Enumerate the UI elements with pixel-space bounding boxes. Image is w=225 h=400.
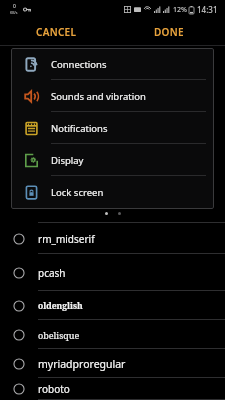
staticText: myriadproregular xyxy=(38,357,126,371)
staticText: oldenglish xyxy=(38,300,83,312)
staticText: 14:31 xyxy=(197,4,218,15)
staticText: roboto xyxy=(38,382,70,396)
button[interactable]: rm_midserif xyxy=(0,223,225,254)
button[interactable]: oldenglish xyxy=(0,291,225,320)
button[interactable]: CANCEL xyxy=(0,18,112,46)
staticText: Connections xyxy=(51,58,107,71)
button[interactable]: pcash xyxy=(0,254,225,291)
staticText: 12% xyxy=(173,5,187,15)
button[interactable]: Lock screen xyxy=(11,176,214,208)
button[interactable]: roboto xyxy=(0,378,225,400)
staticText: rm_midserif xyxy=(38,232,95,246)
button[interactable]: DONE xyxy=(112,18,225,46)
staticText: KB/s xyxy=(10,10,18,15)
button[interactable]: Connections xyxy=(11,48,214,80)
staticText: pcash xyxy=(38,266,66,280)
staticText: Display xyxy=(51,154,84,167)
staticText: DONE xyxy=(154,25,184,39)
staticText: 0 xyxy=(13,3,16,10)
staticText: Lock screen xyxy=(51,186,104,199)
button[interactable] xyxy=(105,212,108,215)
staticText: obelisque xyxy=(38,329,80,341)
button[interactable]: obelisque xyxy=(0,320,225,349)
staticText: Notifications xyxy=(51,122,108,135)
button[interactable]: Notifications xyxy=(11,112,214,144)
staticText: Sounds and vibration xyxy=(51,90,146,103)
button[interactable] xyxy=(118,212,121,215)
button[interactable]: Sounds and vibration xyxy=(11,80,214,112)
staticText: CANCEL xyxy=(36,25,77,39)
button[interactable]: Display xyxy=(11,144,214,176)
button[interactable]: myriadproregular xyxy=(0,349,225,378)
